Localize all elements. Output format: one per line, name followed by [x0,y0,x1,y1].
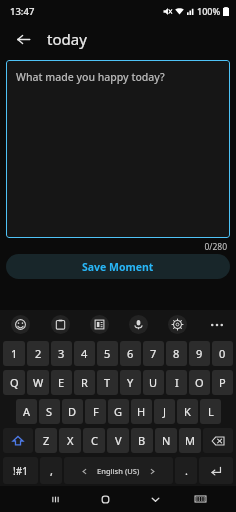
button[interactable]: N [155,428,177,453]
button[interactable]: 0 [212,341,233,366]
button[interactable]: Home [80,486,130,512]
button[interactable]: Z [35,428,57,453]
staticText: D [68,404,77,419]
button[interactable]: G [108,399,129,424]
button[interactable]: P [212,370,233,395]
button[interactable]: 4 [74,341,95,366]
button[interactable]: Hide keyboard [130,486,180,512]
button[interactable]: Emoji [11,315,30,334]
staticText: W [33,375,44,390]
button[interactable]: 3 [51,341,72,366]
button[interactable]: M [179,428,201,453]
staticText: L [208,404,214,419]
button[interactable]: R [74,370,95,395]
button[interactable]: X [59,428,81,453]
staticText: 5 [104,346,111,361]
button[interactable]: Clipboard [51,315,70,334]
staticText: S [46,404,53,419]
staticText: U [149,375,158,390]
button[interactable]: More options [197,310,236,339]
button[interactable]: 9 [189,341,210,366]
button[interactable]: J [154,399,175,424]
staticText: today [47,29,87,49]
staticText: 13:47 [10,5,35,18]
staticText: J [163,404,167,419]
button[interactable]: Voice input [129,315,148,334]
staticText: 6 [127,346,134,361]
button[interactable]: L [200,399,221,424]
staticText: H [137,404,146,419]
button[interactable]: What made you happy today? [6,60,230,238]
staticText: 1 [11,346,18,361]
button[interactable]: C [83,428,105,453]
button[interactable]: , [40,457,62,484]
staticText: 4 [81,346,88,361]
button[interactable]: Back [10,26,36,52]
button[interactable]: K [177,399,198,424]
staticText: Y [127,375,134,390]
staticText: O [195,375,204,390]
button[interactable]: B [131,428,153,453]
staticText: G [114,404,123,419]
button[interactable]: U [143,370,164,395]
button[interactable]: Shift [3,428,33,453]
button[interactable]: Settings [168,315,187,334]
staticText: P [219,375,226,390]
staticText: 100% [197,5,221,17]
button[interactable]: 2 [27,341,49,366]
staticText: N [162,433,171,448]
button[interactable]: Y [120,370,141,395]
staticText: Z [43,433,50,448]
button[interactable]: Save Moment [6,254,230,279]
staticText: F [93,404,99,419]
button[interactable]: D [62,399,83,424]
staticText: Q [10,375,19,390]
staticText: 8 [173,346,180,361]
button[interactable]: A [16,399,37,424]
staticText: M [185,433,195,448]
button[interactable]: I [166,370,187,395]
button[interactable]: Change keyboard [180,486,220,512]
staticText: What made you happy today? [16,70,165,84]
staticText: B [138,433,146,448]
button[interactable]: Enter [199,457,233,484]
staticText: 3 [58,346,65,361]
button[interactable]: 5 [97,341,118,366]
button[interactable]: O [189,370,210,395]
button[interactable]: W [27,370,49,395]
button[interactable]: V [107,428,129,453]
staticText: 0 [219,346,226,361]
button[interactable]: . [175,457,197,484]
staticText: 9 [196,346,203,361]
button[interactable]: 1 [3,341,25,366]
button[interactable]: !#1 [3,457,38,484]
staticText: 0/280 [6,241,227,253]
button[interactable]: Text editing [90,315,109,334]
staticText: English (US) [97,466,140,476]
staticText: , [50,463,53,478]
button[interactable]: Recent apps [30,486,80,512]
staticText: A [23,404,31,419]
button[interactable]: 6 [120,341,141,366]
button[interactable]: H [131,399,152,424]
staticText: V [115,433,122,448]
button[interactable]: S [39,399,60,424]
staticText: R [81,375,88,390]
staticText: 2 [35,346,42,361]
button[interactable]: Space, English (US) [64,457,173,484]
button[interactable]: 7 [143,341,164,366]
staticText: T [104,375,111,390]
staticText: . [185,463,188,478]
button[interactable]: Backspace [203,428,233,453]
staticText: E [58,375,65,390]
button[interactable]: Q [3,370,25,395]
button[interactable]: T [97,370,118,395]
button[interactable]: F [85,399,106,424]
staticText: 7 [150,346,157,361]
staticText: X [67,433,74,448]
button[interactable]: E [51,370,72,395]
button[interactable]: 8 [166,341,187,366]
staticText: I [175,375,179,390]
staticText: C [91,433,98,448]
staticText: !#1 [13,464,28,478]
